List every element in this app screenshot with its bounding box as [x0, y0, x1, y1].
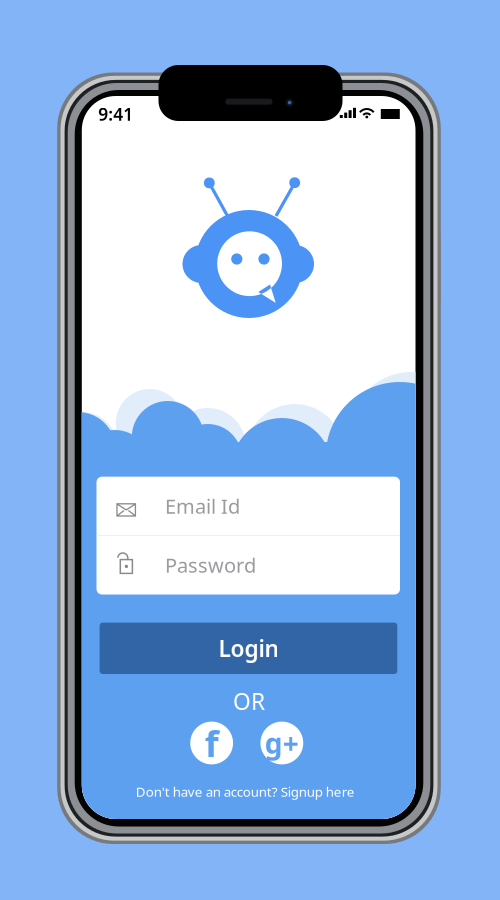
button[interactable]: Login — [82, 96, 415, 819]
button[interactable]: Don't have an account? Signup here — [82, 96, 415, 819]
button[interactable]: Password — [82, 96, 415, 819]
staticText: OR — [233, 686, 265, 716]
staticText: Password — [165, 552, 256, 578]
staticText: Don't have an account? Signup here — [136, 783, 355, 800]
button[interactable]: Sign in with Google Plus — [82, 96, 415, 819]
staticText: f — [205, 719, 219, 767]
button[interactable]: Email Id — [82, 96, 415, 819]
staticText: g+ — [265, 724, 299, 762]
button[interactable]: Sign in with Facebook — [82, 96, 415, 819]
staticText: 9:41 — [98, 102, 133, 125]
staticText: Email Id — [165, 493, 240, 519]
staticText: Login — [218, 633, 278, 663]
